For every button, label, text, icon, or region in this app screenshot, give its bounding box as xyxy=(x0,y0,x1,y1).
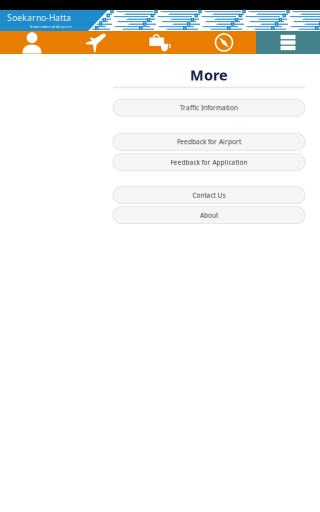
staticText: International Airport xyxy=(30,23,71,29)
button[interactable]: Feedback for Airport xyxy=(113,133,305,150)
staticText: Feedback for Airport xyxy=(177,137,241,146)
staticText: Traffic Information xyxy=(180,103,238,112)
staticText: More xyxy=(190,65,228,85)
button[interactable]: More xyxy=(256,31,320,54)
button[interactable]: Feedback for Application xyxy=(113,154,305,171)
staticText: Soekarno-Hatta xyxy=(7,12,71,23)
button[interactable]: Flights xyxy=(64,31,128,54)
button[interactable]: Shop and Dine xyxy=(128,31,192,54)
button[interactable]: Profile xyxy=(0,31,64,54)
button[interactable]: Contact Us xyxy=(113,187,305,204)
staticText: Contact Us xyxy=(192,191,225,200)
staticText: Feedback for Application xyxy=(170,158,247,167)
button[interactable]: Explore xyxy=(192,31,256,54)
button[interactable]: Traffic Information xyxy=(113,99,305,116)
button[interactable]: About xyxy=(113,207,305,224)
staticText: About xyxy=(200,211,218,220)
